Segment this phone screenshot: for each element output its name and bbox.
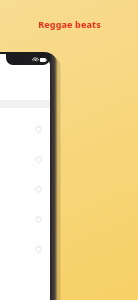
button[interactable]: Reggae beats xyxy=(0,18,138,30)
staticText: Reggae beats xyxy=(38,18,101,30)
button[interactable]: Favorite xyxy=(32,213,44,225)
button[interactable]: Favorite xyxy=(32,153,44,165)
button[interactable]: Favorite xyxy=(32,123,44,135)
button[interactable]: Favorite xyxy=(32,243,44,255)
button[interactable]: Favorite xyxy=(32,183,44,195)
